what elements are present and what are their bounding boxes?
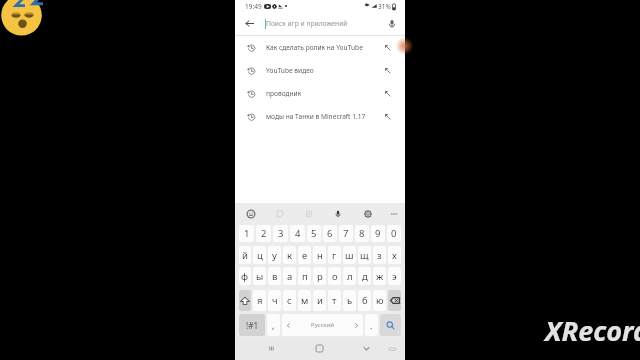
staticText: 31% (378, 2, 391, 11)
button[interactable]: Emoji (241, 203, 261, 224)
staticText: ф (241, 270, 249, 283)
staticText: проводник (266, 89, 302, 98)
staticText: х (392, 249, 397, 262)
button[interactable]: моды на Танки в Minecraft 1.17 (235, 105, 405, 128)
button[interactable]: м (298, 290, 311, 311)
staticText: щ (360, 249, 369, 262)
button[interactable]: ф (239, 267, 251, 285)
staticText: 4 (295, 227, 301, 240)
button[interactable]: ч (268, 290, 281, 311)
staticText: ю (376, 294, 384, 307)
staticText: с (287, 294, 292, 307)
staticText: о (332, 270, 338, 283)
button[interactable]: 3 (273, 225, 288, 242)
button[interactable]: 4 (290, 225, 305, 242)
button[interactable]: Home (310, 337, 329, 360)
button[interactable]: т (328, 290, 341, 311)
button[interactable]: Hide keyboard (357, 337, 376, 360)
button[interactable]: ш (343, 246, 356, 264)
button[interactable]: 9 (371, 225, 385, 242)
button[interactable]: Settings (358, 203, 378, 224)
button[interactable]: ь (343, 290, 356, 311)
staticText: !#1 (246, 320, 259, 331)
button[interactable]: щ (358, 246, 371, 264)
staticText: я (257, 294, 263, 307)
button[interactable]: Русский (282, 314, 363, 336)
button[interactable]: ю (373, 290, 386, 311)
staticText: Русский (311, 321, 334, 329)
staticText: моды на Танки в Minecraft 1.17 (266, 112, 366, 121)
button[interactable]: , (267, 314, 280, 336)
staticText: YouTube видео (266, 66, 314, 75)
button[interactable]: 5 (307, 225, 321, 242)
button[interactable]: б (358, 290, 371, 311)
staticText: э (392, 270, 397, 283)
button[interactable]: н (313, 246, 326, 264)
staticText: у (272, 249, 277, 262)
button[interactable]: Recorder (388, 34, 412, 58)
button[interactable]: Back (240, 12, 258, 35)
button[interactable]: э (388, 267, 401, 285)
staticText: 19:49 (245, 2, 262, 11)
staticText: в (272, 270, 278, 283)
button[interactable]: !#1 (239, 314, 265, 336)
staticText: 8 (359, 227, 365, 240)
button[interactable]: х (388, 246, 401, 264)
button[interactable]: 8 (355, 225, 369, 242)
staticText: 7 (343, 227, 349, 240)
staticText: д (362, 270, 368, 283)
staticText: ь (347, 294, 353, 307)
button[interactable]: о (328, 267, 341, 285)
button[interactable]: проводник (235, 82, 405, 105)
button[interactable]: к (283, 246, 296, 264)
button[interactable]: 2 (256, 225, 271, 242)
button[interactable]: Keyboard layout (385, 337, 400, 360)
button[interactable]: с (283, 290, 296, 311)
staticText: ц (257, 249, 263, 262)
button[interactable]: Voice search (383, 12, 401, 35)
button[interactable]: ж (373, 267, 386, 285)
staticText: а (287, 270, 293, 283)
staticText: л (347, 270, 353, 283)
button[interactable]: Backspace (388, 290, 401, 311)
button[interactable]: More (384, 203, 404, 224)
button[interactable]: . (365, 314, 378, 336)
button[interactable]: 7 (339, 225, 353, 242)
button[interactable]: й (239, 246, 251, 264)
button[interactable]: д (358, 267, 371, 285)
staticText: н (317, 249, 323, 262)
staticText: 0 (391, 227, 397, 240)
button[interactable]: 1 (239, 225, 254, 242)
button[interactable]: ы (253, 267, 266, 285)
staticText: г (332, 249, 337, 262)
button[interactable]: ц (253, 246, 266, 264)
staticText: и (317, 294, 323, 307)
button[interactable]: Recent apps (262, 337, 281, 360)
staticText: ш (345, 249, 354, 262)
button[interactable]: 6 (323, 225, 337, 242)
button[interactable]: е (298, 246, 311, 264)
button[interactable]: Clipboard (299, 203, 319, 224)
button[interactable]: г (328, 246, 341, 264)
button[interactable]: 0 (387, 225, 401, 242)
button[interactable]: Search (380, 314, 401, 336)
button[interactable]: в (268, 267, 281, 285)
button[interactable]: и (313, 290, 326, 311)
button[interactable]: п (298, 267, 311, 285)
staticText: 6 (327, 227, 333, 240)
button[interactable]: л (343, 267, 356, 285)
button[interactable]: Как сделать ролик на YouTube (235, 36, 405, 59)
button[interactable]: а (283, 267, 296, 285)
staticText: р (317, 270, 323, 283)
button[interactable]: з (373, 246, 386, 264)
button[interactable]: я (253, 290, 266, 311)
button[interactable]: р (313, 267, 326, 285)
staticText: й (242, 249, 248, 262)
button[interactable]: у (268, 246, 281, 264)
staticText: м (301, 294, 309, 307)
button[interactable]: Shift (239, 290, 251, 311)
button[interactable]: Voice input (328, 203, 348, 224)
staticText: XRecorder (545, 312, 640, 349)
button[interactable]: Stickers (270, 203, 290, 224)
button[interactable]: YouTube видео (235, 59, 405, 82)
